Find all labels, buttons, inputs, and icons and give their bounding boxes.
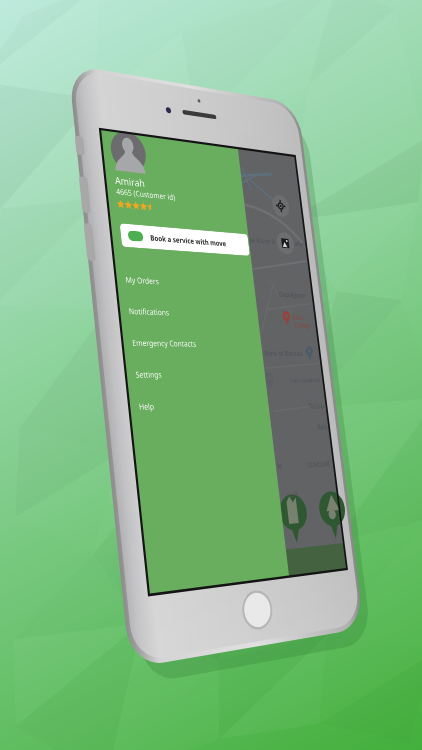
staticText: Bank of Baroda [187, 230, 244, 241]
staticText: Keri [252, 314, 267, 325]
button[interactable]: My Orders [0, 145, 184, 178]
staticText: ya Bazar D [185, 101, 223, 111]
staticText: My Orders [12, 154, 54, 166]
button[interactable]: Notifications [0, 178, 184, 211]
staticText: Gopalgoan [219, 162, 260, 173]
staticText: Taziab [243, 290, 266, 301]
button[interactable]: Map type [225, 94, 251, 120]
staticText: SUNDURI [231, 356, 264, 366]
button[interactable]: Emergency Contacts [0, 211, 184, 244]
staticText: Indira Gandhi Rd [220, 262, 265, 270]
button[interactable]: Book a service with move [12, 100, 183, 125]
staticText: Colleg [237, 197, 259, 207]
staticText: Book a service with move [49, 107, 151, 118]
button[interactable]: Help [0, 277, 184, 310]
button[interactable]: Settings [0, 244, 184, 277]
staticText: Govt. [234, 188, 253, 198]
staticText: Emergency Contacts [12, 220, 94, 232]
